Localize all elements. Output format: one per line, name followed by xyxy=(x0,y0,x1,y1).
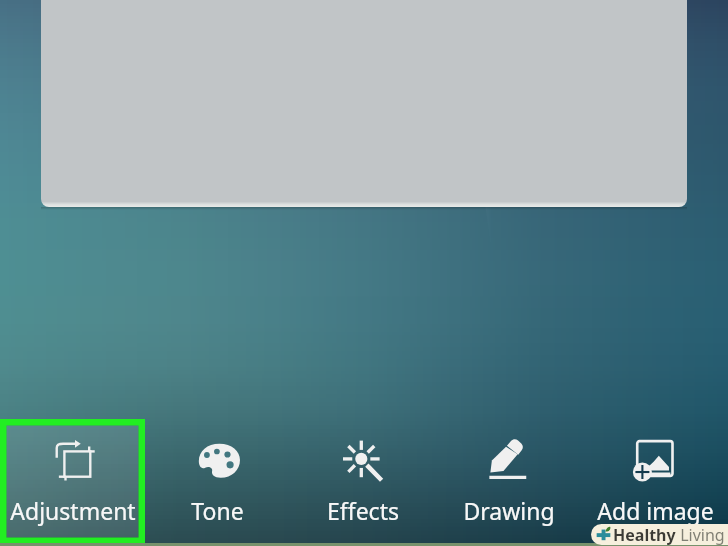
other: Tone xyxy=(195,436,241,482)
button[interactable]: Effects xyxy=(290,419,436,544)
staticText: Drawing xyxy=(463,495,555,526)
button[interactable]: Add image xyxy=(582,419,728,544)
other: Adjustment xyxy=(50,436,96,482)
staticText: Healthy xyxy=(613,524,676,545)
other: Effects xyxy=(340,436,386,482)
button[interactable]: Adjustment xyxy=(0,419,145,544)
button[interactable]: Drawing xyxy=(436,419,582,544)
staticText: Adjustment xyxy=(10,495,136,526)
staticText: Tone xyxy=(191,495,244,526)
other: Drawing xyxy=(486,436,532,482)
staticText: Living xyxy=(676,524,725,545)
other: Add image xyxy=(632,436,678,482)
staticText: Effects xyxy=(327,495,399,526)
staticText: Add image xyxy=(597,495,714,526)
button[interactable]: Tone xyxy=(145,419,290,544)
